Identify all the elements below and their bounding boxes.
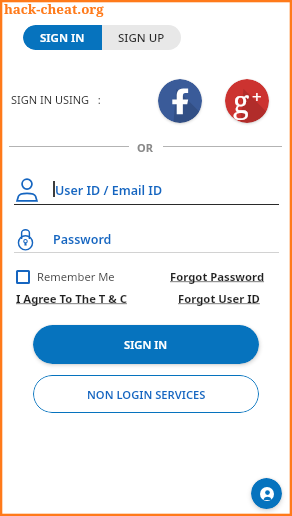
button[interactable]: NON LOGIN SERVICES [33,375,259,413]
staticText: Password [53,231,112,248]
staticText: g [233,81,250,122]
staticText: User ID / Email ID [55,182,163,199]
staticText: SIGN IN [124,337,168,352]
button[interactable]: Profile [251,478,282,509]
staticText: SIGN UP [118,30,165,46]
button[interactable]: Forgot Password [170,269,265,284]
button[interactable]: SIGN IN [33,325,259,364]
staticText: hack-cheat.org [4,0,104,18]
staticText: SIGN IN USING : [11,92,101,107]
staticText: + [252,85,262,108]
button[interactable]: Sign in with Google Plus [225,79,269,123]
staticText: Remember Me [37,269,115,284]
button[interactable]: Forgot User ID [178,291,260,306]
staticText: OR [137,140,153,155]
staticText: SIGN IN [40,30,85,46]
staticText: NON LOGIN SERVICES [87,387,206,402]
button[interactable]: Sign in with Facebook [158,79,202,123]
button[interactable]: I Agree To The T & C [16,291,127,306]
button[interactable]: SIGN UP [102,25,181,50]
button[interactable]: SIGN IN [23,25,102,50]
button[interactable]: Remember Me [16,269,115,284]
